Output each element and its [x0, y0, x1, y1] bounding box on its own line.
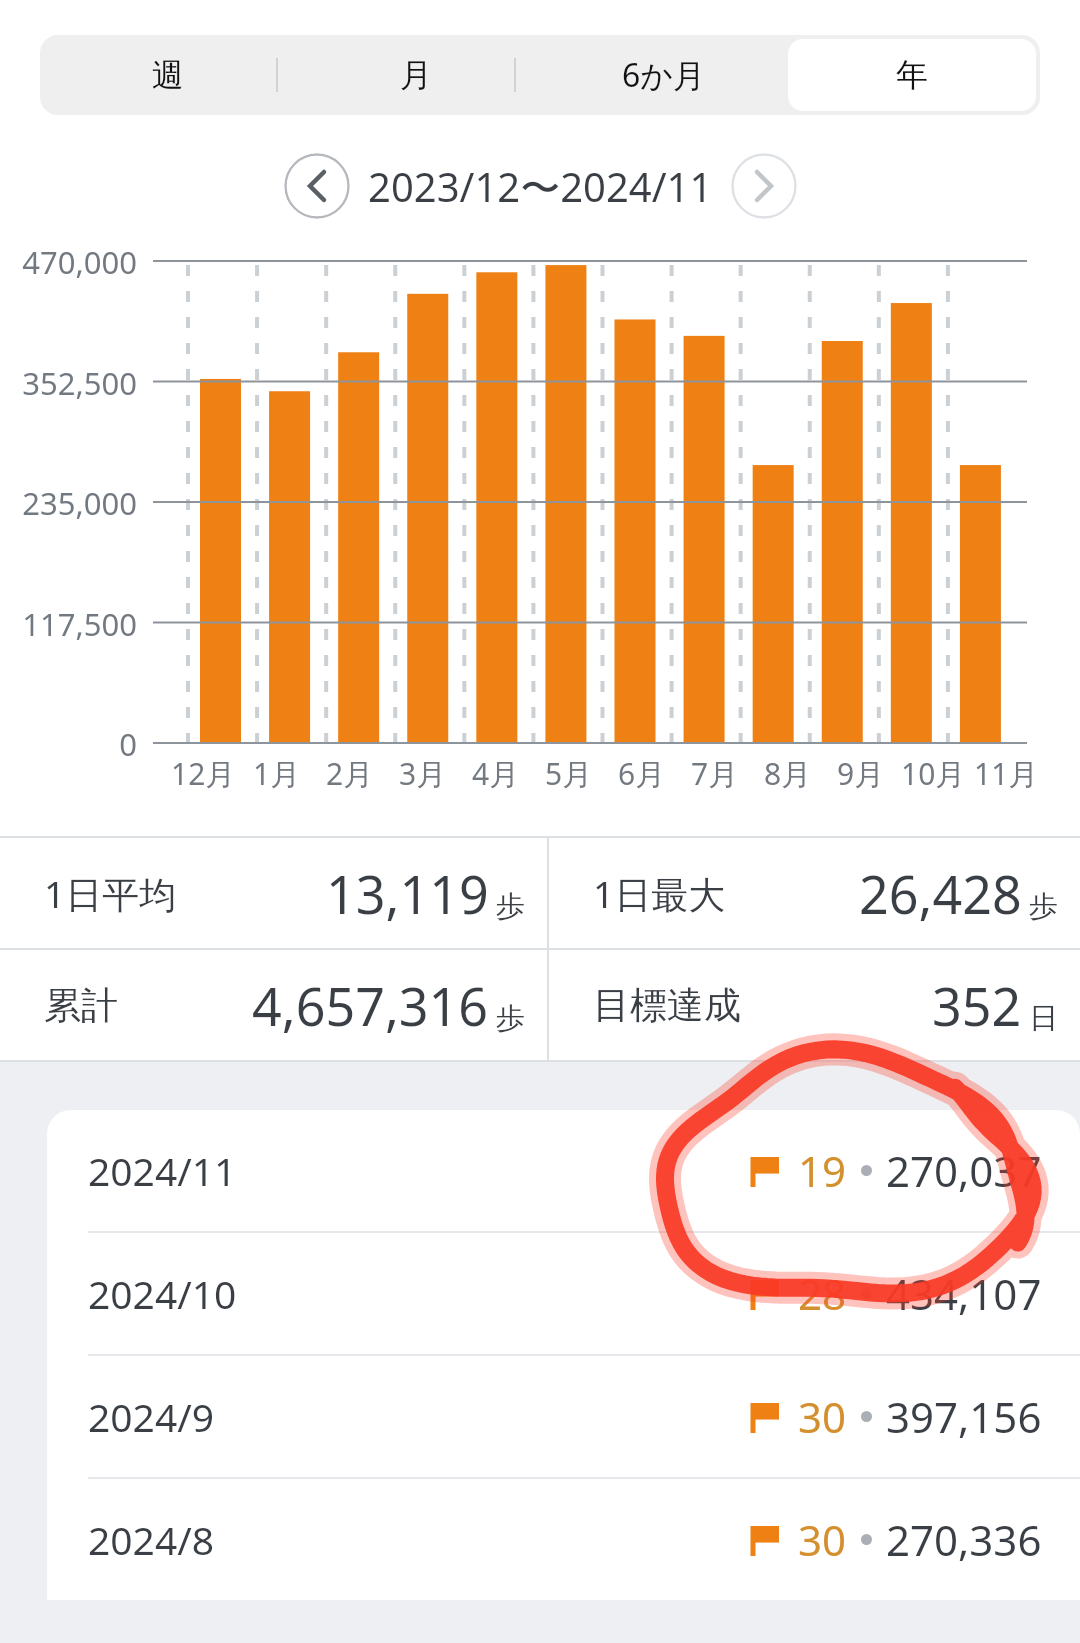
staticText: 月 — [400, 55, 432, 95]
staticText: 歩 — [1029, 888, 1058, 925]
staticText: 8月 — [764, 753, 812, 794]
staticText: 1月 — [253, 753, 301, 794]
button[interactable]: 週 — [44, 39, 292, 111]
staticText: 2024/9 — [88, 1390, 215, 1443]
staticText: 2023/12〜2024/11 — [368, 159, 713, 214]
staticText: 0 — [0, 723, 137, 763]
staticText: 13,119 — [326, 858, 489, 929]
staticText: 1日最大 — [593, 868, 726, 919]
staticText: 2024/8 — [88, 1513, 215, 1566]
staticText: 26,428 — [859, 858, 1022, 929]
staticText: 19 — [798, 1142, 847, 1199]
staticText: 352 — [932, 970, 1022, 1041]
button[interactable]: Next period — [731, 153, 797, 219]
staticText: 3月 — [399, 753, 447, 794]
staticText: 1日平均 — [44, 868, 177, 919]
staticText: 2月 — [326, 753, 374, 794]
staticText: 歩 — [496, 888, 525, 925]
staticText: 270,037 — [886, 1142, 1042, 1199]
button[interactable]: 1日最大 — [549, 838, 1080, 948]
staticText: 2024/11 — [88, 1144, 237, 1197]
staticText: 12月 — [171, 753, 236, 794]
staticText: 28 — [798, 1265, 847, 1322]
staticText: 397,156 — [886, 1388, 1042, 1445]
staticText: 470,000 — [0, 241, 137, 281]
staticText: 6月 — [618, 753, 666, 794]
staticText: 目標達成 — [593, 982, 741, 1029]
button[interactable]: 1日平均 — [0, 838, 547, 948]
button[interactable]: 月 — [292, 39, 540, 111]
button[interactable]: 目標達成 — [549, 950, 1080, 1060]
staticText: 7月 — [691, 753, 739, 794]
staticText: 30 — [798, 1511, 847, 1568]
staticText: 週 — [152, 55, 184, 95]
button[interactable]: 累計 — [0, 950, 547, 1060]
staticText: 日 — [1029, 1000, 1058, 1037]
staticText: 6か月 — [622, 53, 706, 97]
staticText: 10月 — [901, 753, 966, 794]
staticText: 434,107 — [886, 1265, 1042, 1322]
button[interactable]: 2024/11 — [47, 1110, 1080, 1231]
staticText: 歩 — [496, 1000, 525, 1037]
button[interactable]: 6か月 — [540, 39, 788, 111]
staticText: 5月 — [545, 753, 593, 794]
staticText: 235,000 — [0, 482, 137, 522]
staticText: 2024/10 — [88, 1267, 237, 1320]
button[interactable]: 年 — [788, 39, 1036, 111]
staticText: 4月 — [472, 753, 520, 794]
staticText: 年 — [896, 55, 928, 95]
staticText: 30 — [798, 1388, 847, 1445]
button[interactable]: 2024/8 — [47, 1479, 1080, 1600]
staticText: 11月 — [974, 753, 1039, 794]
staticText: 117,500 — [0, 603, 137, 643]
button[interactable]: Previous period — [284, 153, 350, 219]
staticText: 270,336 — [886, 1511, 1042, 1568]
button[interactable]: 2024/9 — [47, 1356, 1080, 1477]
staticText: 9月 — [837, 753, 885, 794]
staticText: 4,657,316 — [252, 970, 489, 1041]
staticText: 累計 — [44, 982, 118, 1029]
button[interactable]: 2024/10 — [47, 1233, 1080, 1354]
staticText: 352,500 — [0, 362, 137, 402]
